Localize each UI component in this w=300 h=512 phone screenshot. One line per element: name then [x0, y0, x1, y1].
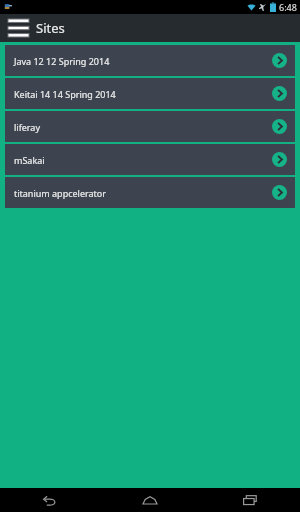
button[interactable]: mSakai — [5, 144, 295, 175]
button[interactable]: Java 12 12 Spring 2014 — [5, 45, 295, 76]
staticText: titanium appcelerator — [14, 187, 272, 199]
button[interactable]: liferay — [5, 111, 295, 142]
staticText: Sites — [36, 19, 65, 37]
staticText: mSakai — [14, 154, 272, 166]
staticText: 6:48 — [279, 1, 297, 13]
staticText: Keitai 14 14 Spring 2014 — [14, 88, 272, 100]
button[interactable]: Home — [100, 488, 200, 512]
button[interactable]: Open navigation menu — [6, 16, 30, 40]
staticText: Java 12 12 Spring 2014 — [14, 55, 272, 67]
staticText: liferay — [14, 121, 272, 133]
button[interactable]: Keitai 14 14 Spring 2014 — [5, 78, 295, 109]
button[interactable]: Back — [0, 488, 100, 512]
button[interactable]: Recent apps — [200, 488, 300, 512]
button[interactable]: titanium appcelerator — [5, 177, 295, 208]
